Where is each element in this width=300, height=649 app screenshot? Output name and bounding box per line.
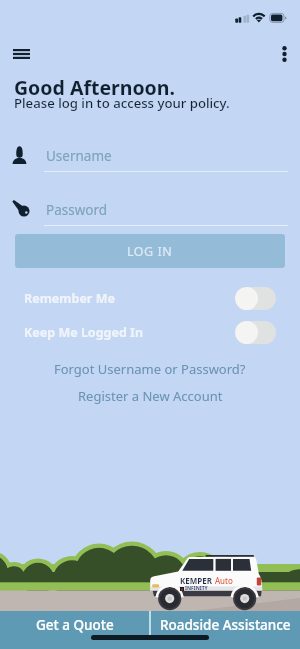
button[interactable]: Forgot Username or Password? [0, 360, 300, 377]
staticText: Forgot Username or Password? [54, 360, 246, 377]
staticText: Auto [215, 575, 233, 586]
button[interactable]: Remember Me [0, 287, 300, 310]
staticText: Please log in to access your policy. [14, 94, 230, 112]
staticText: LOG IN [127, 243, 173, 260]
staticText: Good Afternoon. [14, 74, 175, 101]
staticText: INFINITY [185, 585, 208, 592]
staticText: Username [46, 147, 112, 165]
button[interactable]: Get a Quote [0, 611, 149, 638]
staticText: Register a New Account [78, 387, 223, 404]
button[interactable]: Keep Me Logged In [0, 321, 300, 344]
staticText: Get a Quote [36, 616, 114, 634]
staticText: KEMPER [180, 575, 213, 586]
button[interactable]: LOG IN [15, 234, 285, 268]
button[interactable]: Menu [7, 43, 35, 65]
button[interactable]: Register a New Account [0, 387, 300, 404]
staticText: Keep Me Logged In [24, 324, 144, 341]
staticText: Password [46, 201, 108, 219]
button[interactable]: More options [273, 43, 295, 65]
staticText: Roadside Assistance [160, 616, 291, 634]
button[interactable]: Roadside Assistance [151, 611, 300, 638]
staticText: Remember Me [24, 290, 115, 307]
